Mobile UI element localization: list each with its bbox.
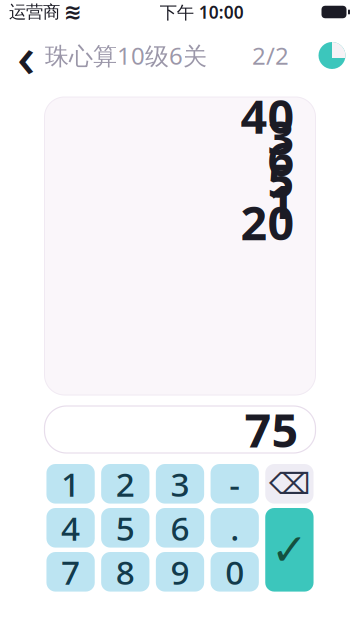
button[interactable]: . <box>210 508 259 548</box>
staticText: 5 <box>267 149 294 211</box>
staticText: 0 <box>225 550 244 594</box>
button[interactable]: 9 <box>156 552 204 592</box>
staticText: 6 <box>170 506 189 550</box>
button[interactable]: 4 <box>46 508 95 548</box>
staticText: 1 <box>61 462 80 506</box>
staticText: ≋ <box>64 0 82 24</box>
staticText: 下午 10:00 <box>160 0 244 23</box>
button[interactable]: 5 <box>101 508 149 548</box>
button[interactable]: 7 <box>46 552 95 592</box>
staticText: 珠心算10级6关 <box>45 40 207 71</box>
staticText: ✓ <box>271 525 308 575</box>
staticText: 运营商 <box>9 1 60 23</box>
staticText: ‹ <box>17 18 35 93</box>
staticText: 1 <box>267 170 294 232</box>
button[interactable]: 返回 <box>10 33 42 77</box>
button[interactable]: - <box>210 464 259 504</box>
button[interactable]: 3 <box>156 464 204 504</box>
button[interactable]: 删除 <box>265 464 313 504</box>
button[interactable]: 0 <box>210 552 259 592</box>
staticText: 9 <box>170 550 189 594</box>
staticText: . <box>230 506 239 550</box>
staticText: 5 <box>116 506 135 550</box>
button[interactable]: 2 <box>101 464 149 504</box>
button[interactable]: 75 <box>44 406 315 453</box>
staticText: 6 <box>267 127 294 189</box>
staticText: 8 <box>116 550 135 594</box>
staticText: 7 <box>61 550 80 594</box>
staticText: 2/2 <box>252 40 289 71</box>
staticText: 3 <box>170 462 189 506</box>
button[interactable]: 进度 <box>310 33 354 77</box>
staticText: 75 <box>244 398 298 460</box>
staticText: 40 <box>240 85 294 147</box>
button[interactable]: 6 <box>156 508 204 548</box>
staticText: 20 <box>240 191 294 253</box>
staticText: 2 <box>116 462 135 506</box>
staticText: ⌫ <box>269 467 310 500</box>
button[interactable]: 8 <box>101 552 149 592</box>
staticText: 3 <box>267 106 294 168</box>
button[interactable]: 确认 <box>265 508 313 592</box>
staticText: - <box>229 462 240 506</box>
button[interactable]: 1 <box>46 464 95 504</box>
staticText: 4 <box>61 506 80 550</box>
